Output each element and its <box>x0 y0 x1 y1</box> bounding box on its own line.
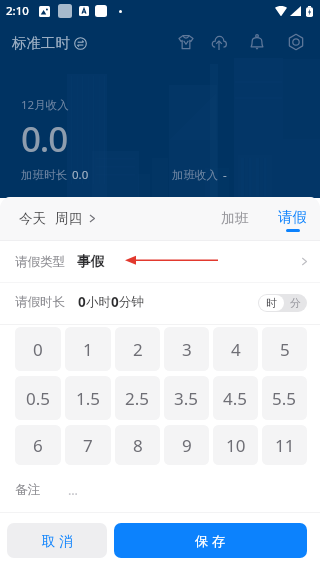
button[interactable]: 8 <box>115 425 160 465</box>
button[interactable]: 2 <box>115 327 160 371</box>
staticText: 0 <box>111 293 119 311</box>
button[interactable]: 0 <box>15 327 61 371</box>
button[interactable]: 取 消 <box>7 523 107 558</box>
staticText: 请假时长 <box>15 294 65 310</box>
staticText: … <box>68 482 78 499</box>
staticText: 取 消 <box>42 532 73 550</box>
button[interactable]: 5 <box>262 327 307 371</box>
button[interactable]: Notifications <box>244 29 270 55</box>
staticText: 10 <box>226 434 246 457</box>
staticText: 1.5 <box>76 387 101 410</box>
staticText: 0.5 <box>26 387 51 410</box>
staticText: 加班时长 <box>21 168 67 182</box>
button[interactable]: 9 <box>164 425 209 465</box>
button[interactable]: 11 <box>262 425 307 465</box>
button[interactable]: 4.5 <box>213 376 258 420</box>
staticText: 3.5 <box>174 387 199 410</box>
button[interactable]: 请假类型 <box>0 241 320 282</box>
staticText: 11 <box>275 434 295 457</box>
staticText: 2.5 <box>125 387 150 410</box>
staticText: 2:10 <box>6 3 29 19</box>
staticText: - <box>223 167 227 183</box>
staticText: 5.5 <box>272 387 297 410</box>
staticText: 4.5 <box>223 387 248 410</box>
button[interactable]: 3.5 <box>164 376 209 420</box>
button[interactable]: Settings <box>283 29 309 55</box>
staticText: 0 <box>33 338 43 361</box>
staticText: 分 <box>290 296 301 310</box>
button[interactable]: 分 <box>284 294 307 312</box>
staticText: 加班 <box>221 210 249 227</box>
staticText: 3 <box>182 338 192 361</box>
button[interactable]: 4 <box>213 327 258 371</box>
button[interactable]: 请假 <box>270 197 314 240</box>
staticText: 时 <box>266 296 277 310</box>
button[interactable]: 标准工时 <box>12 26 320 60</box>
button[interactable]: 7 <box>65 425 111 465</box>
button[interactable]: 5.5 <box>262 376 307 420</box>
button[interactable]: 保 存 <box>114 523 307 558</box>
staticText: 今天 <box>19 210 46 227</box>
button[interactable]: 3 <box>164 327 209 371</box>
button[interactable]: 加班 <box>215 197 255 240</box>
staticText: 9 <box>182 434 192 457</box>
staticText: 6 <box>33 434 43 457</box>
button[interactable]: 6 <box>15 425 61 465</box>
staticText: 2 <box>133 338 143 361</box>
staticText: 8 <box>133 434 143 457</box>
button[interactable]: 1.5 <box>65 376 111 420</box>
staticText: 0 <box>78 293 86 311</box>
staticText: 7 <box>83 434 93 457</box>
button[interactable]: 10 <box>213 425 258 465</box>
button[interactable]: 时 <box>259 295 284 311</box>
button[interactable]: Upload <box>206 29 232 55</box>
staticText: 0.0 <box>21 115 67 163</box>
button[interactable]: 备注 <box>0 471 320 509</box>
button[interactable]: 2.5 <box>115 376 160 420</box>
button[interactable]: Uniform <box>173 29 199 55</box>
button[interactable]: 1 <box>65 327 111 371</box>
staticText: 事假 <box>77 253 104 270</box>
staticText: 请假 <box>278 208 307 226</box>
staticText: 1 <box>83 338 93 361</box>
staticText: 0.0 <box>72 167 89 183</box>
staticText: 5 <box>280 338 290 361</box>
staticText: 加班收入 <box>172 168 218 182</box>
staticText: 4 <box>231 338 241 361</box>
staticText: 标准工时 <box>12 34 70 52</box>
button[interactable]: 0.5 <box>15 376 61 420</box>
staticText: 请假类型 <box>15 254 65 270</box>
staticText: 周四 <box>55 210 82 227</box>
staticText: 保 存 <box>195 532 226 550</box>
staticText: 小时 <box>86 294 111 310</box>
staticText: 12月收入 <box>21 97 69 113</box>
button[interactable]: 今天 <box>19 197 99 240</box>
staticText: 分钟 <box>119 294 144 310</box>
staticText: 备注 <box>15 482 41 498</box>
